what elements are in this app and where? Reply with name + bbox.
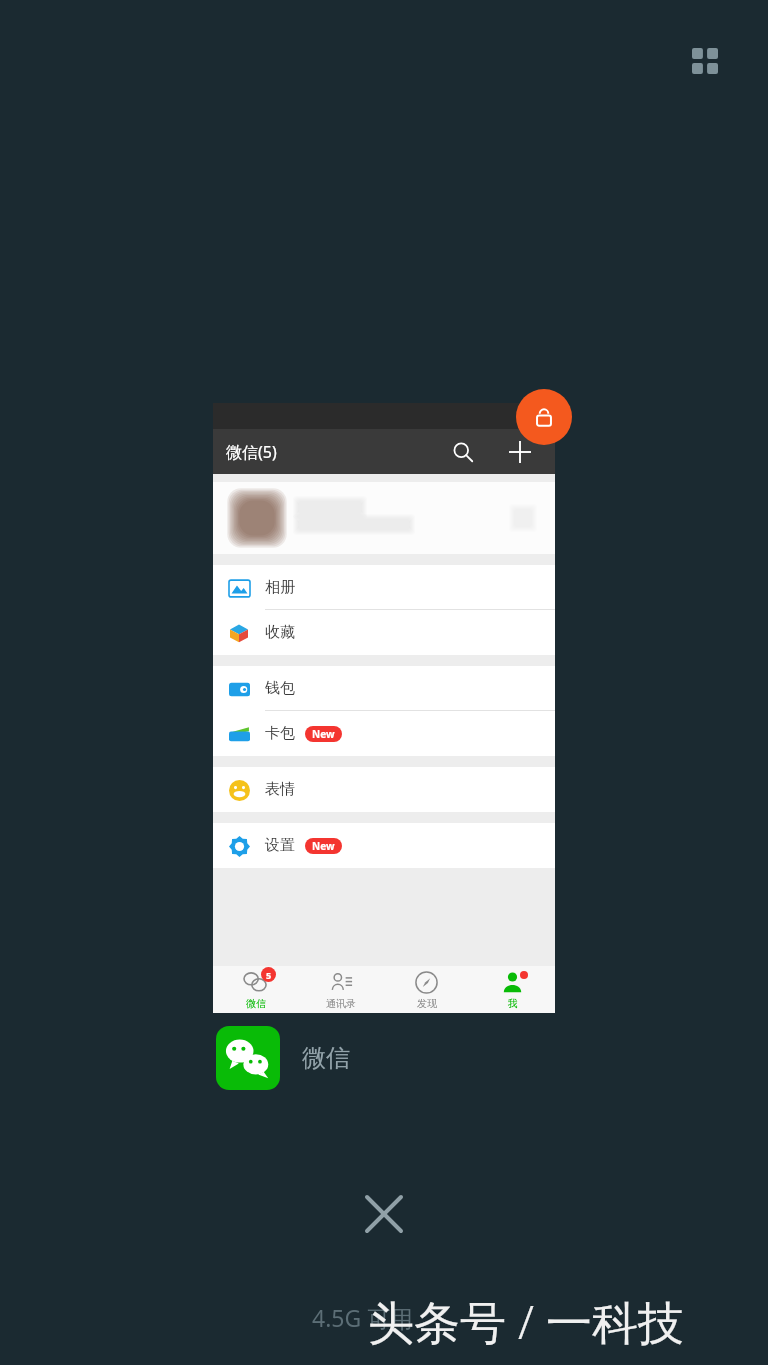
button[interactable]: 卡包 (213, 711, 555, 756)
button[interactable]: 设置 (213, 823, 555, 868)
staticText: 5 (266, 969, 272, 981)
staticText: New (312, 727, 335, 741)
staticText: 我 (508, 997, 518, 1010)
staticText: 表情 (265, 780, 295, 799)
staticText: 收藏 (265, 623, 295, 642)
staticText: 发现 (417, 997, 437, 1010)
button[interactable]: 发现 (383, 966, 469, 1013)
staticText: 卡包 (265, 724, 295, 743)
button[interactable]: 通讯录 (298, 966, 383, 1013)
button[interactable]: Add (503, 435, 537, 469)
button[interactable]: Search (446, 435, 480, 469)
staticText: 微信(5) (226, 441, 277, 463)
staticText: 通讯录 (326, 997, 356, 1010)
button[interactable]: 微信(5) (213, 403, 555, 1013)
button[interactable]: 钱包 (213, 666, 555, 711)
staticText: 相册 (265, 578, 295, 597)
staticText: 钱包 (265, 679, 295, 698)
button[interactable]: 相册 (213, 565, 555, 610)
staticText: 设置 (265, 836, 295, 855)
button[interactable]: 微信 (216, 1026, 350, 1090)
button[interactable] (213, 482, 555, 554)
button[interactable]: Close all (354, 1184, 414, 1244)
staticText: 4.5G 可用 (312, 1302, 414, 1333)
button[interactable]: 表情 (213, 767, 555, 812)
staticText: New (312, 839, 335, 853)
button[interactable]: 5 (213, 966, 298, 1013)
button[interactable]: Lock app (516, 389, 572, 445)
button[interactable]: 收藏 (213, 610, 555, 655)
staticText: 微信 (246, 997, 266, 1010)
button[interactable]: 我 (469, 966, 555, 1013)
staticText: 微信 (302, 1043, 350, 1073)
staticText: 头条号 / 一科技 (368, 1290, 684, 1353)
button[interactable]: All apps (678, 34, 732, 88)
